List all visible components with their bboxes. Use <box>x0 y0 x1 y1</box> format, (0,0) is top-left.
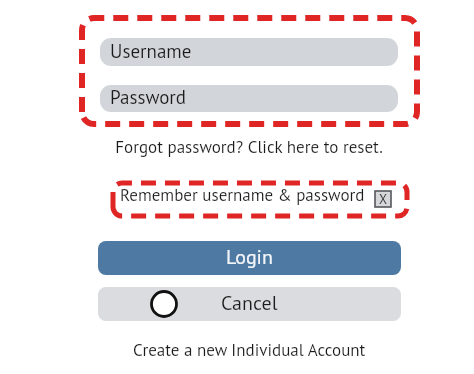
staticText: Username <box>110 39 192 64</box>
staticText: Cancel <box>221 290 278 316</box>
button[interactable]: Cancel <box>98 287 401 321</box>
button[interactable]: Forgot password? Click here to reset. <box>24 135 474 159</box>
button[interactable]: Login <box>98 241 401 275</box>
staticText: Remember username & password <box>120 184 365 206</box>
staticText: Create a new Individual Account <box>133 339 366 361</box>
staticText: Login <box>226 244 273 270</box>
button[interactable]: Username <box>100 38 398 66</box>
button[interactable]: X <box>375 191 391 207</box>
button[interactable]: Create a new Individual Account <box>24 337 474 363</box>
staticText: Password <box>110 85 187 110</box>
button[interactable]: Password <box>100 85 398 112</box>
staticText: X <box>379 191 388 207</box>
staticText: Forgot password? Click here to reset. <box>115 136 383 158</box>
